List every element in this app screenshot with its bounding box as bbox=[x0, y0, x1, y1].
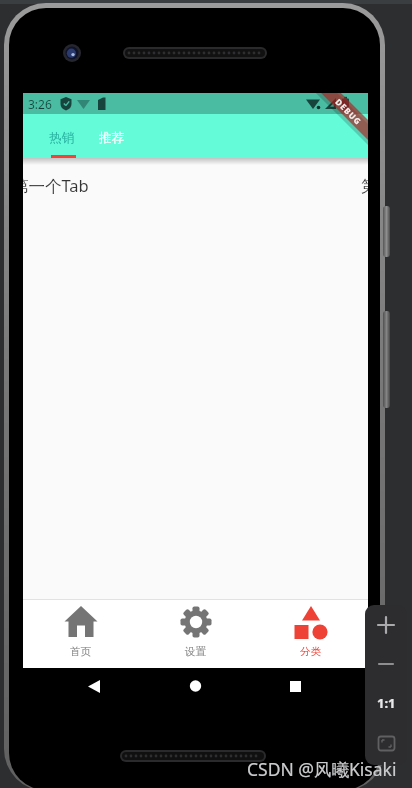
staticText: 分类 bbox=[300, 645, 321, 658]
staticText: 第一个Tab bbox=[23, 174, 89, 197]
staticText: 1:1 bbox=[377, 694, 396, 712]
staticText: 首页 bbox=[70, 645, 91, 658]
staticText: 热销 bbox=[49, 130, 74, 146]
button[interactable] bbox=[365, 723, 407, 763]
button[interactable] bbox=[365, 645, 407, 683]
button[interactable]: 推荐 bbox=[87, 114, 136, 158]
staticText: 第二个Tab bbox=[361, 174, 368, 197]
button[interactable]: 首页 bbox=[23, 599, 138, 668]
staticText: 设置 bbox=[185, 645, 206, 658]
button[interactable]: 分类 bbox=[253, 599, 368, 668]
staticText: 3:26 bbox=[28, 96, 52, 112]
button[interactable]: 1:1 bbox=[365, 683, 407, 723]
button[interactable]: 设置 bbox=[138, 599, 253, 668]
staticText: 推荐 bbox=[99, 130, 124, 146]
button[interactable] bbox=[365, 605, 407, 645]
button[interactable]: 热销 bbox=[37, 114, 86, 158]
staticText: DEBUG bbox=[333, 96, 364, 127]
staticText: CSDN @风曦Kisaki bbox=[247, 757, 397, 781]
